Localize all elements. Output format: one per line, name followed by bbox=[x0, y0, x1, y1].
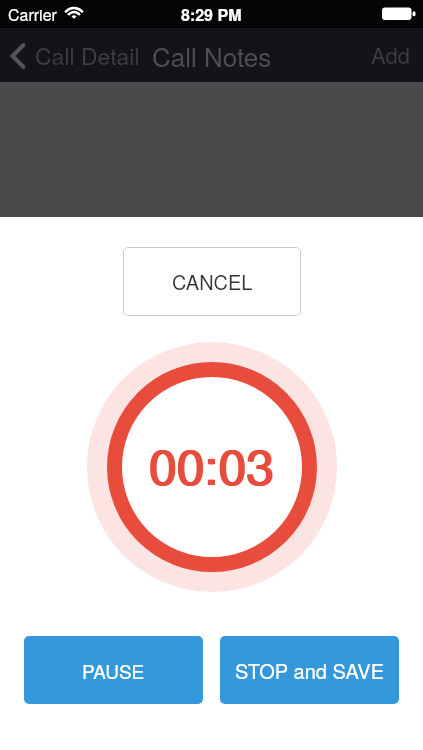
staticText: 00:03 bbox=[149, 428, 275, 500]
staticText: 00:03 bbox=[150, 428, 276, 500]
button[interactable]: PAUSE bbox=[24, 636, 203, 704]
button[interactable]: Call Detail bbox=[10, 39, 140, 72]
button[interactable]: Add bbox=[371, 39, 410, 71]
button[interactable]: CANCEL bbox=[123, 247, 301, 316]
staticText: STOP and SAVE bbox=[235, 656, 384, 685]
staticText: Call Notes bbox=[152, 37, 272, 74]
staticText: 8:29 PM bbox=[181, 3, 242, 26]
staticText: PAUSE bbox=[82, 657, 145, 684]
staticText: Call Detail bbox=[35, 39, 140, 72]
button[interactable]: STOP and SAVE bbox=[220, 636, 399, 704]
staticText: Carrier bbox=[8, 3, 57, 26]
staticText: CANCEL bbox=[172, 267, 253, 296]
staticText: 00:03 bbox=[148, 428, 274, 500]
